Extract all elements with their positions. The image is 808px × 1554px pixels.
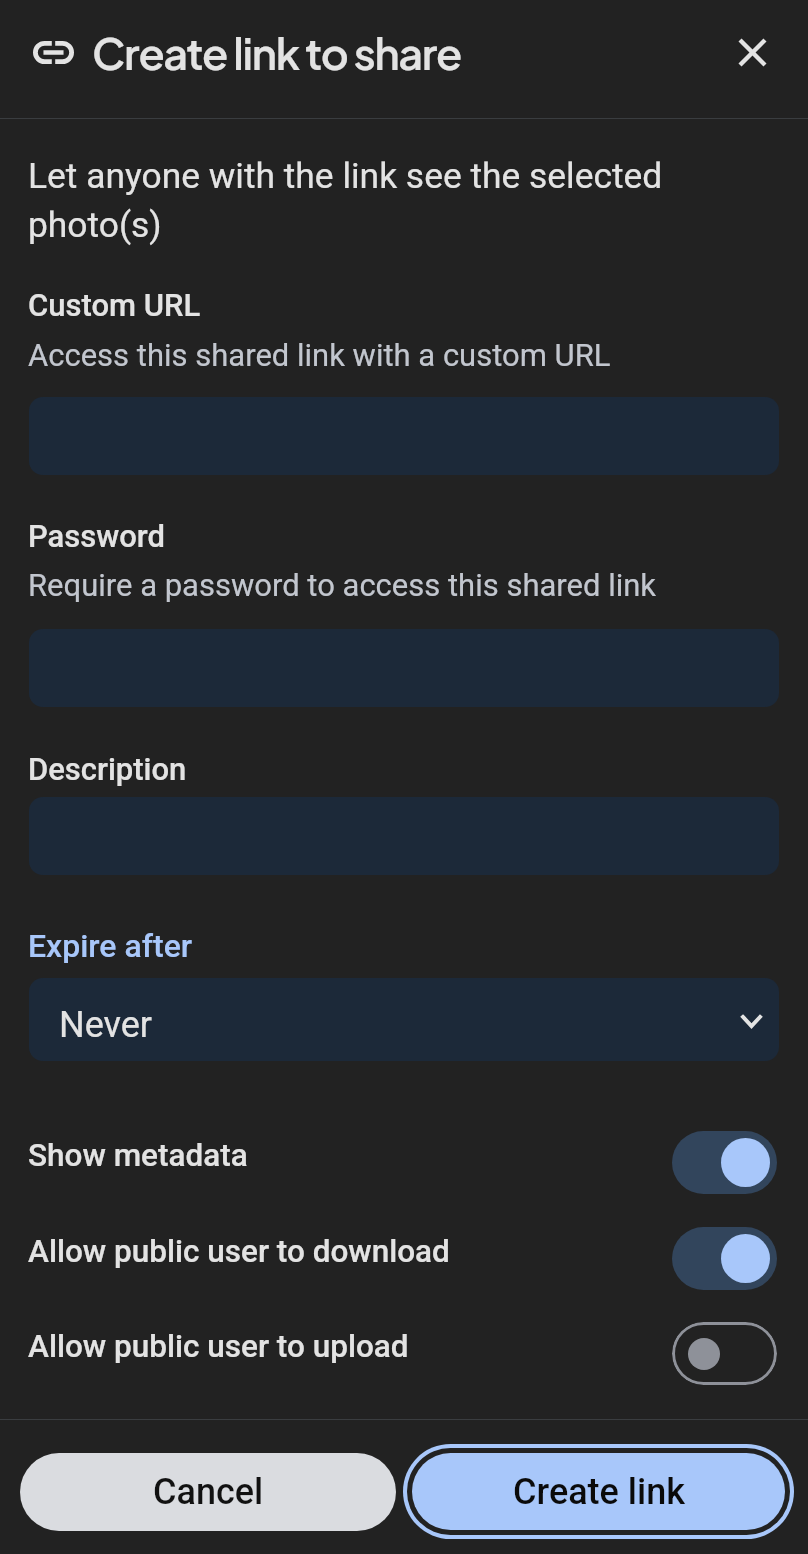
- staticText: Cancel: [153, 1471, 264, 1513]
- button[interactable]: Cancel: [20, 1453, 396, 1531]
- staticText: Custom URL: [28, 287, 201, 323]
- button[interactable]: Close: [724, 24, 780, 80]
- staticText: Password: [28, 518, 165, 554]
- button[interactable]: Never: [29, 978, 779, 1061]
- staticText: Let anyone with the link see the selecte…: [28, 155, 688, 245]
- staticText: Create link: [513, 1471, 685, 1513]
- button[interactable]: Show metadata: [0, 1115, 808, 1210]
- staticText: Description: [28, 751, 187, 787]
- staticText: Show metadata: [28, 1137, 248, 1174]
- staticText: Allow public user to upload: [28, 1328, 409, 1365]
- button[interactable]: Create link: [403, 1444, 794, 1539]
- staticText: Expire after: [28, 927, 193, 965]
- button[interactable]: Allow public user to upload: [0, 1306, 808, 1401]
- other: Shared link: [25, 24, 81, 80]
- staticText: Access this shared link with a custom UR…: [28, 337, 611, 373]
- staticText: Require a password to access this shared…: [28, 567, 657, 603]
- button[interactable]: Allow public user to download: [0, 1211, 808, 1306]
- staticText: Create link to share: [92, 25, 462, 79]
- staticText: Allow public user to download: [28, 1233, 450, 1270]
- staticText: Never: [59, 1004, 153, 1046]
